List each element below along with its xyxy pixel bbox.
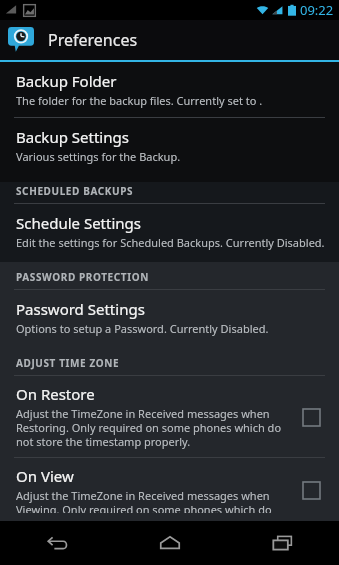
staticText: Adjust the TimeZone in Received messages… <box>16 406 283 449</box>
staticText: Edit the settings for Scheduled Backups.… <box>16 235 325 250</box>
button[interactable]: Back <box>17 521 97 565</box>
staticText: On View <box>16 466 74 486</box>
button[interactable]: App icon <box>0 20 339 60</box>
button[interactable]: Backup Settings <box>0 118 339 173</box>
button[interactable]: On Restore <box>0 376 339 457</box>
button[interactable]: Home <box>130 521 210 565</box>
staticText: Options to setup a Password. Currently D… <box>16 321 269 336</box>
button[interactable]: On View <box>0 458 339 521</box>
staticText: Schedule Settings <box>16 213 141 233</box>
staticText: 09:22 <box>300 1 334 19</box>
staticText: Adjust the TimeZone in Received messages… <box>16 488 283 513</box>
staticText: Preferences <box>48 29 138 51</box>
staticText: The folder for the backup files. Current… <box>16 93 263 108</box>
staticText: Various settings for the Backup. <box>16 149 181 164</box>
button[interactable]: Backup Folder <box>0 62 339 117</box>
staticText: Backup Folder <box>16 71 117 91</box>
button[interactable]: Schedule Settings <box>0 204 339 259</box>
staticText: On Restore <box>16 384 95 404</box>
button[interactable]: Password Settings <box>0 290 339 345</box>
staticText: ADJUST TIME ZONE <box>16 356 120 370</box>
button[interactable]: Recent apps <box>243 521 323 565</box>
other: On View <box>293 472 329 508</box>
staticText: Backup Settings <box>16 127 129 147</box>
other: App icon <box>8 27 34 53</box>
other: On Restore <box>293 399 329 435</box>
staticText: Password Settings <box>16 299 145 319</box>
staticText: SCHEDULED BACKUPS <box>16 184 134 198</box>
staticText: PASSWORD PROTECTION <box>16 270 149 284</box>
